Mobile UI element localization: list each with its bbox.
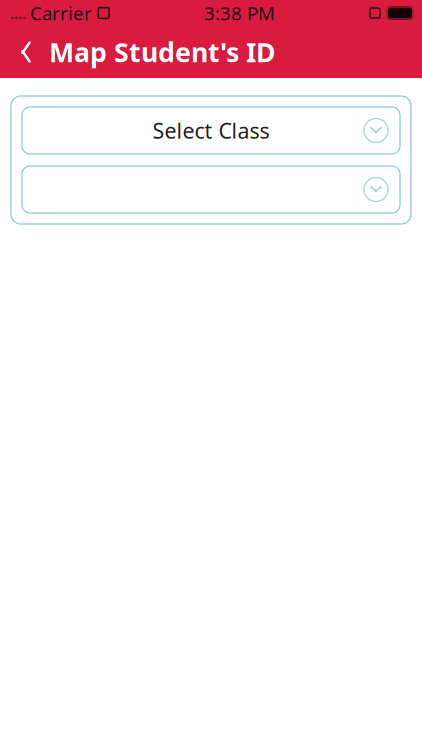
staticText: Select Class <box>152 116 269 145</box>
staticText: Carrier <box>30 1 92 25</box>
staticText: Map Student's ID <box>49 34 276 70</box>
button[interactable]: Select option <box>22 166 400 213</box>
button[interactable]: Back <box>0 26 42 78</box>
button[interactable]: Select Class <box>22 107 400 154</box>
staticText: 3:38 PM <box>204 1 275 25</box>
staticText: .... <box>10 2 26 24</box>
